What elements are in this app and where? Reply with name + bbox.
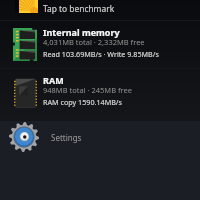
button[interactable]: Settings [0,118,200,158]
button[interactable]: Internal memory [0,21,200,68]
button[interactable]: Tap to benchmark [0,0,200,20]
staticText: RAM [43,74,64,86]
button[interactable]: RAM [0,69,200,116]
staticText: Settings [51,132,82,143]
staticText: 948MB total · 245MB free [43,85,132,95]
staticText: Read 103.69MB/s · Write 9.85MB/s [43,49,159,59]
staticText: 4,031MB total · 2,332MB free [43,37,145,47]
staticText: RAM copy 1590.14MB/s [43,97,122,107]
staticText: Internal memory [43,26,120,38]
staticText: Tap to benchmark [43,3,115,14]
